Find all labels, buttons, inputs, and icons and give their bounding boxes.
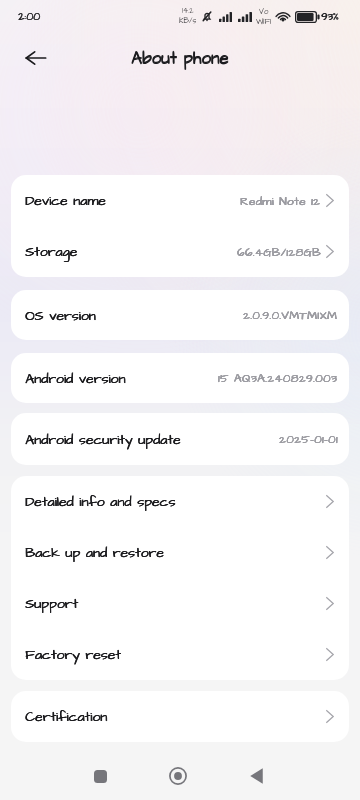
staticText: Factory reset (25, 645, 121, 664)
staticText: 2.0.9.0.VMTMIXM (243, 307, 338, 323)
staticText: OS version (25, 306, 96, 325)
staticText: Support (25, 594, 78, 613)
staticText: Certification (25, 707, 108, 726)
staticText: KB/s (179, 16, 197, 27)
button[interactable]: Certification (11, 691, 349, 742)
staticText: Detailed info and specs (25, 492, 176, 511)
button[interactable]: Detailed info and specs (11, 476, 349, 527)
staticText: WIFI (256, 16, 272, 27)
staticText: 93% (321, 9, 339, 24)
staticText: Vo (259, 6, 269, 17)
button[interactable]: Home (156, 754, 200, 798)
button[interactable]: OS version (11, 290, 349, 340)
button[interactable]: Back (234, 754, 278, 798)
staticText: 2:00 (18, 9, 41, 24)
button[interactable]: Android version (11, 353, 349, 403)
staticText: Storage (25, 242, 78, 261)
button[interactable]: Factory reset (11, 629, 349, 680)
staticText: About phone (131, 46, 229, 70)
staticText: Android version (25, 369, 126, 388)
staticText: Device name (25, 191, 106, 210)
staticText: 2025-01-01 (279, 431, 338, 447)
button[interactable]: Storage (11, 226, 349, 277)
staticText: Redmi Note 12 (240, 193, 321, 209)
button[interactable]: Device name (11, 175, 349, 226)
staticText: 14.2 (182, 6, 194, 17)
button[interactable]: Recents (78, 754, 122, 798)
button[interactable]: Support (11, 578, 349, 629)
button[interactable]: Android security update (11, 413, 349, 465)
staticText: 66.4GB/128GB (237, 244, 321, 260)
button[interactable]: Back (18, 40, 54, 76)
staticText: Back up and restore (25, 543, 164, 562)
button[interactable]: Back up and restore (11, 527, 349, 578)
staticText: Android security update (25, 430, 181, 449)
staticText: 15 AQ3A.240829.003 (218, 370, 338, 386)
